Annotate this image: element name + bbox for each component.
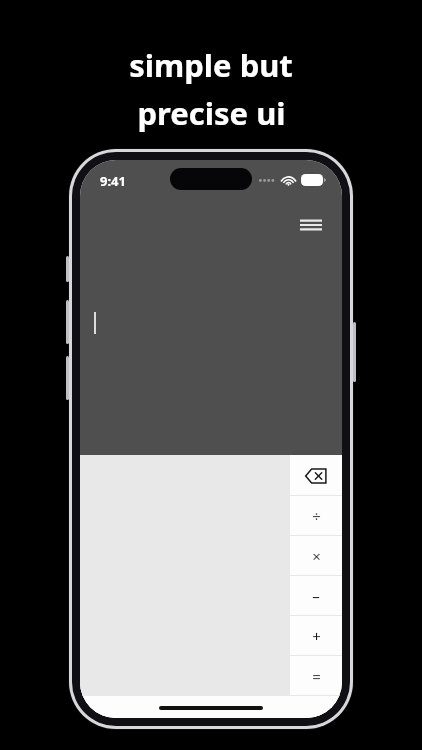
button[interactable]: Backspace — [290, 455, 342, 496]
staticText: × — [312, 546, 321, 566]
staticText: ÷ — [312, 506, 321, 526]
staticText: = — [312, 666, 321, 686]
other: Backspace — [303, 463, 329, 489]
button[interactable]: Menu — [294, 208, 328, 242]
button[interactable]: × — [290, 536, 342, 576]
button[interactable]: ÷ — [290, 496, 342, 536]
staticText: 9:41 — [100, 172, 126, 190]
button[interactable]: + — [290, 616, 342, 656]
button[interactable]: – — [290, 576, 342, 616]
staticText: + — [312, 626, 321, 646]
staticText: – — [312, 586, 320, 606]
staticText: precise ui — [137, 92, 286, 134]
button[interactable]: = — [290, 656, 342, 696]
button[interactable]: ( — [80, 656, 133, 696]
staticText: simple but — [129, 44, 293, 86]
